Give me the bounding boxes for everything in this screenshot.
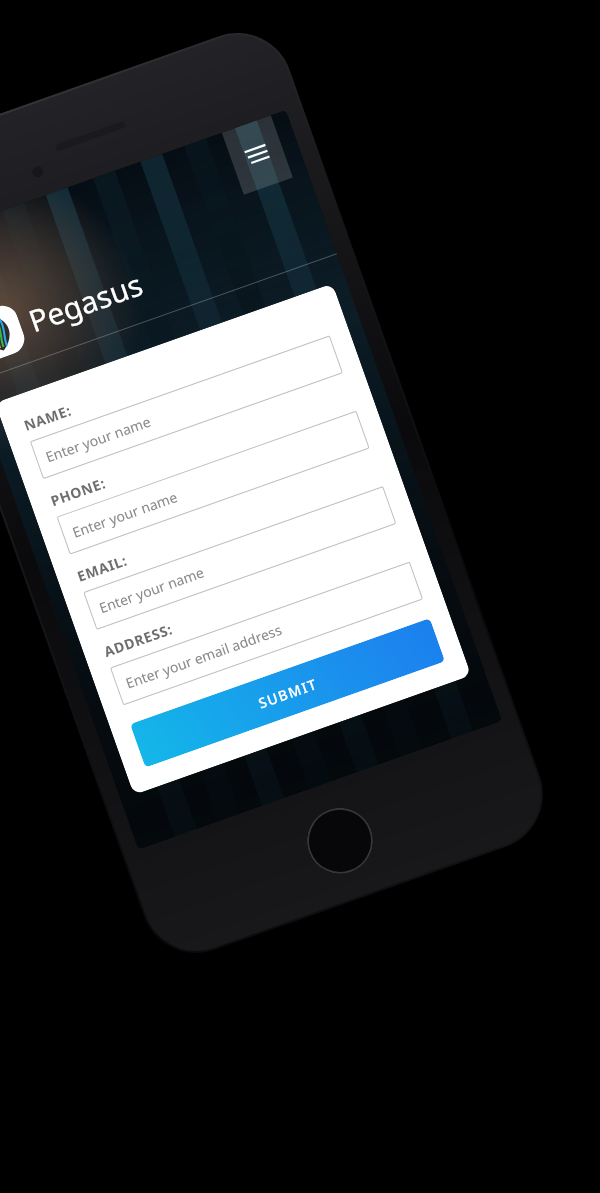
staticText: Pegasus [23,263,148,341]
button[interactable]: Pegasus [0,182,337,377]
staticText: PHONE: [48,473,109,510]
staticText: Enter your name [96,563,206,617]
staticText: Enter your email address [123,620,285,693]
staticText: Enter your name [70,487,180,542]
button[interactable]: Home [298,799,382,883]
staticText: SUBMIT [255,674,320,713]
staticText: ADDRESS: [101,619,175,661]
button[interactable]: ADDRESS: [101,537,423,705]
staticText: EMAIL: [75,550,130,586]
staticText: NAME: [21,400,75,435]
staticText: Enter your name [43,412,153,466]
button[interactable]: PHONE: [48,386,370,555]
button[interactable]: EMAIL: [75,462,396,630]
button[interactable]: SUBMIT [130,618,445,768]
button[interactable]: Menu [222,115,293,195]
button[interactable]: NAME: [21,311,343,479]
